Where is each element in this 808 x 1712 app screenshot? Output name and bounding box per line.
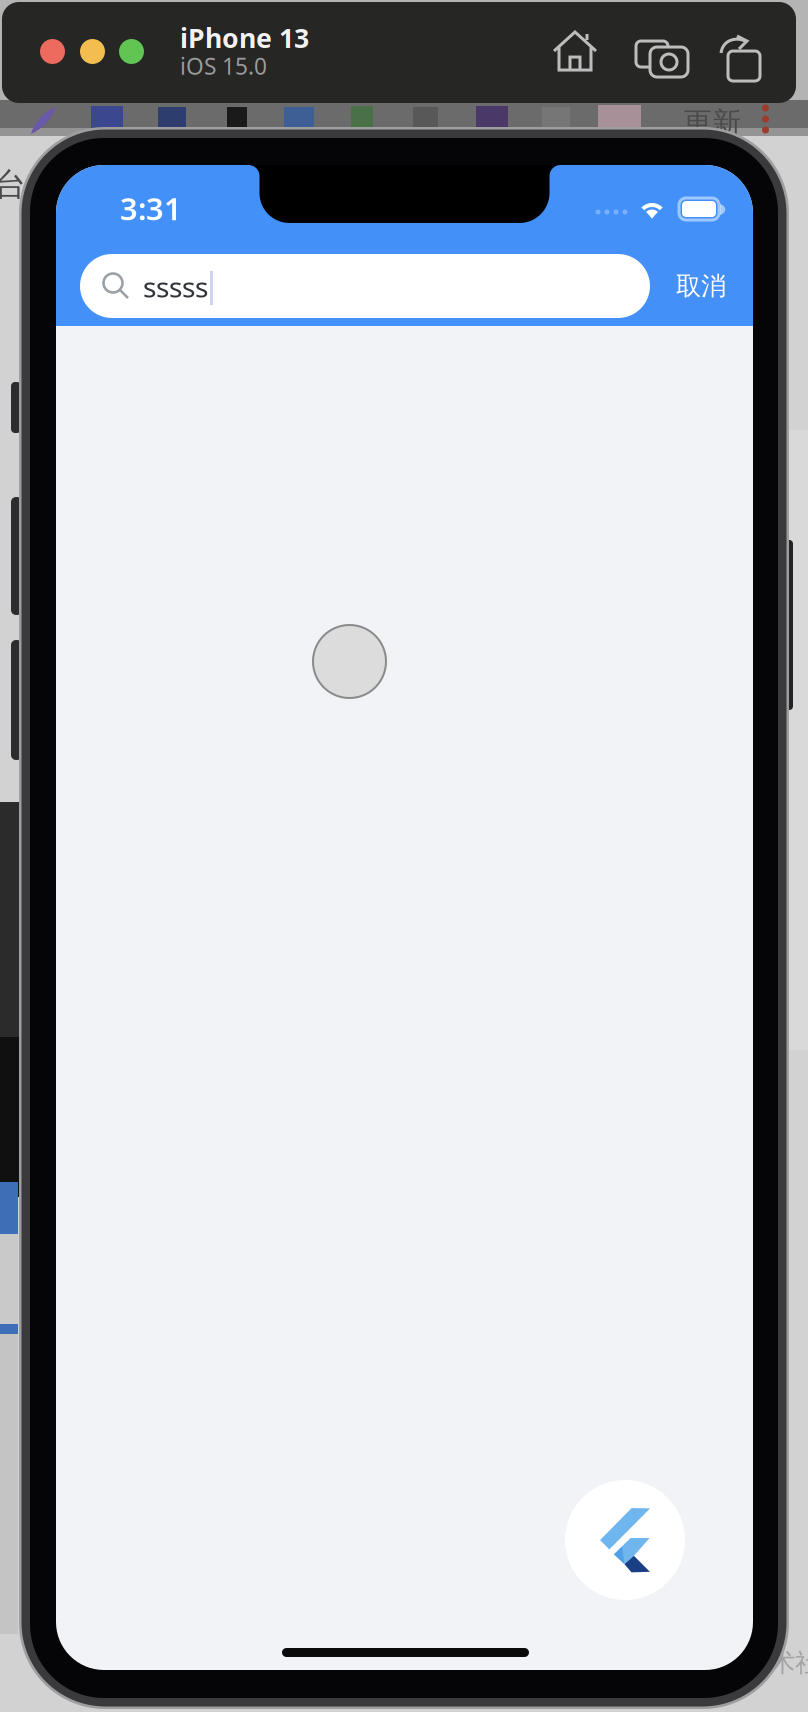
- button[interactable]: sssss: [80, 254, 650, 318]
- staticText: iOS 15.0: [180, 51, 267, 81]
- button[interactable]: Screenshot: [628, 28, 682, 74]
- button[interactable]: Home: [552, 28, 598, 74]
- staticText: 取消: [676, 270, 726, 301]
- staticText: 更新: [683, 105, 741, 141]
- button[interactable]: Flutter DevTools: [565, 1480, 685, 1600]
- staticText: sssss: [143, 268, 208, 305]
- staticText: iPhone 13: [180, 20, 309, 55]
- staticText: 3:31: [120, 188, 182, 229]
- button[interactable]: 取消: [666, 254, 736, 318]
- staticText: 台: [0, 165, 26, 204]
- staticText: @稀土掘金技术社区: [622, 1645, 808, 1679]
- button[interactable]: Rotate: [712, 26, 760, 74]
